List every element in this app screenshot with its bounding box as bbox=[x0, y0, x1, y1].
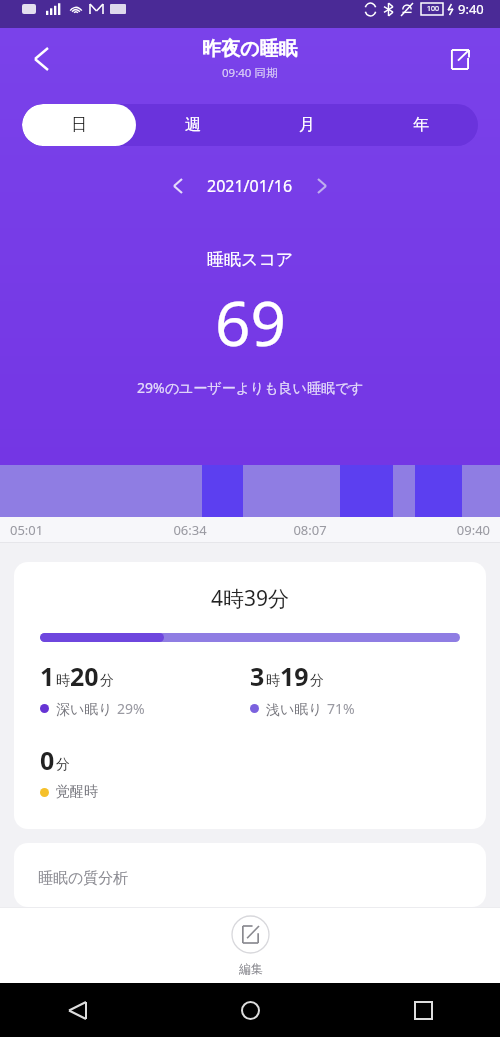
staticText: 08:07 bbox=[250, 521, 370, 539]
staticText: 2021/01/16 bbox=[207, 175, 293, 197]
staticText: 1 bbox=[40, 659, 55, 693]
staticText: 日 bbox=[71, 115, 87, 135]
staticText: 浅い眠り bbox=[266, 699, 327, 718]
button[interactable]: 週 bbox=[136, 104, 250, 146]
staticText: 覚醒時 bbox=[56, 783, 98, 801]
staticText: 9:40 bbox=[458, 0, 484, 18]
staticText: 編集 bbox=[239, 961, 263, 976]
staticText: 29%のユーザーよりも良い睡眠です bbox=[137, 378, 364, 397]
staticText: 69 bbox=[215, 280, 286, 364]
staticText: 71% bbox=[327, 699, 355, 718]
staticText: 分 bbox=[100, 672, 114, 690]
staticText: 05:01 bbox=[10, 521, 130, 539]
staticText: 20 bbox=[70, 659, 99, 693]
staticText: 06:34 bbox=[130, 521, 250, 539]
staticText: 100 bbox=[427, 4, 440, 14]
staticText: 週 bbox=[185, 115, 201, 135]
button[interactable]: 睡眠の質分析 bbox=[14, 843, 486, 907]
staticText: 4時39分 bbox=[40, 584, 460, 613]
button[interactable]: 日 bbox=[22, 104, 136, 146]
staticText: 09:40 bbox=[370, 521, 490, 539]
staticText: 分 bbox=[56, 756, 70, 774]
staticText: 09:40 同期 bbox=[222, 65, 278, 81]
button[interactable]: Share bbox=[436, 36, 482, 82]
staticText: 睡眠スコア bbox=[207, 249, 294, 270]
button[interactable]: Home bbox=[229, 989, 271, 1031]
button[interactable]: 月 bbox=[250, 104, 364, 146]
button[interactable]: 年 bbox=[364, 104, 478, 146]
staticText: 睡眠の質分析 bbox=[38, 869, 129, 888]
staticText: 月 bbox=[299, 115, 315, 135]
staticText: 深い眠り bbox=[56, 699, 117, 718]
staticText: 昨夜の睡眠 bbox=[202, 37, 298, 61]
staticText: 時 bbox=[56, 672, 70, 690]
staticText: 時 bbox=[266, 672, 280, 690]
staticText: 3 bbox=[250, 659, 265, 693]
button[interactable]: 4時39分 bbox=[14, 562, 486, 829]
staticText: 19 bbox=[280, 659, 309, 693]
button[interactable]: Next day bbox=[305, 169, 339, 203]
staticText: 分 bbox=[310, 672, 324, 690]
staticText: 年 bbox=[413, 115, 429, 135]
button[interactable]: 編集 bbox=[231, 915, 270, 976]
staticText: 29% bbox=[117, 699, 145, 718]
staticText: 0 bbox=[40, 743, 55, 777]
button[interactable]: Previous day bbox=[161, 169, 195, 203]
button[interactable]: Recents bbox=[402, 989, 444, 1031]
button[interactable]: Back bbox=[56, 989, 98, 1031]
button[interactable]: Back bbox=[18, 36, 64, 82]
